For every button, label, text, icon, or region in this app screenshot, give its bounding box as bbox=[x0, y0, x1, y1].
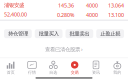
staticText: 持仓管理 bbox=[8, 30, 28, 37]
button[interactable]: 我的 bbox=[107, 61, 128, 75]
button[interactable]: 自选 bbox=[43, 61, 64, 75]
staticText: 交易 bbox=[71, 70, 79, 75]
staticText: 行情 bbox=[28, 70, 36, 75]
button[interactable]: 首页 bbox=[0, 61, 21, 75]
staticText: 13.100 bbox=[108, 11, 124, 19]
button[interactable]: 行情 bbox=[21, 61, 43, 75]
staticText: 52,400.00 bbox=[4, 11, 27, 18]
staticText: 浦银安盛 bbox=[4, 2, 24, 9]
staticText: 0.280% bbox=[57, 11, 74, 19]
button[interactable]: 查看已清仓股票 › bbox=[45, 46, 83, 53]
button[interactable]: 止盈止损 bbox=[96, 29, 124, 38]
button[interactable]: 交易 bbox=[64, 61, 85, 75]
staticText: 145.36 bbox=[58, 2, 74, 9]
staticText: 首页 bbox=[7, 70, 15, 75]
staticText: 我的 bbox=[113, 70, 121, 75]
button[interactable]: 持仓管理 bbox=[4, 29, 32, 38]
staticText: 查看已清仓股票 › bbox=[45, 46, 83, 53]
staticText: 批量卖出 bbox=[69, 30, 89, 37]
button[interactable]: 批量卖出 bbox=[65, 29, 93, 38]
staticText: 批量买入 bbox=[39, 30, 59, 37]
staticText: 13.064 bbox=[108, 2, 124, 9]
staticText: 4000 bbox=[86, 2, 98, 9]
staticText: 4000 bbox=[86, 11, 98, 19]
staticText: 自选 bbox=[49, 70, 57, 75]
button[interactable]: 资讯 bbox=[85, 61, 107, 75]
staticText: 资讯 bbox=[92, 70, 100, 75]
button[interactable]: 批量买入 bbox=[35, 29, 63, 38]
staticText: 止盈止损 bbox=[100, 30, 120, 37]
